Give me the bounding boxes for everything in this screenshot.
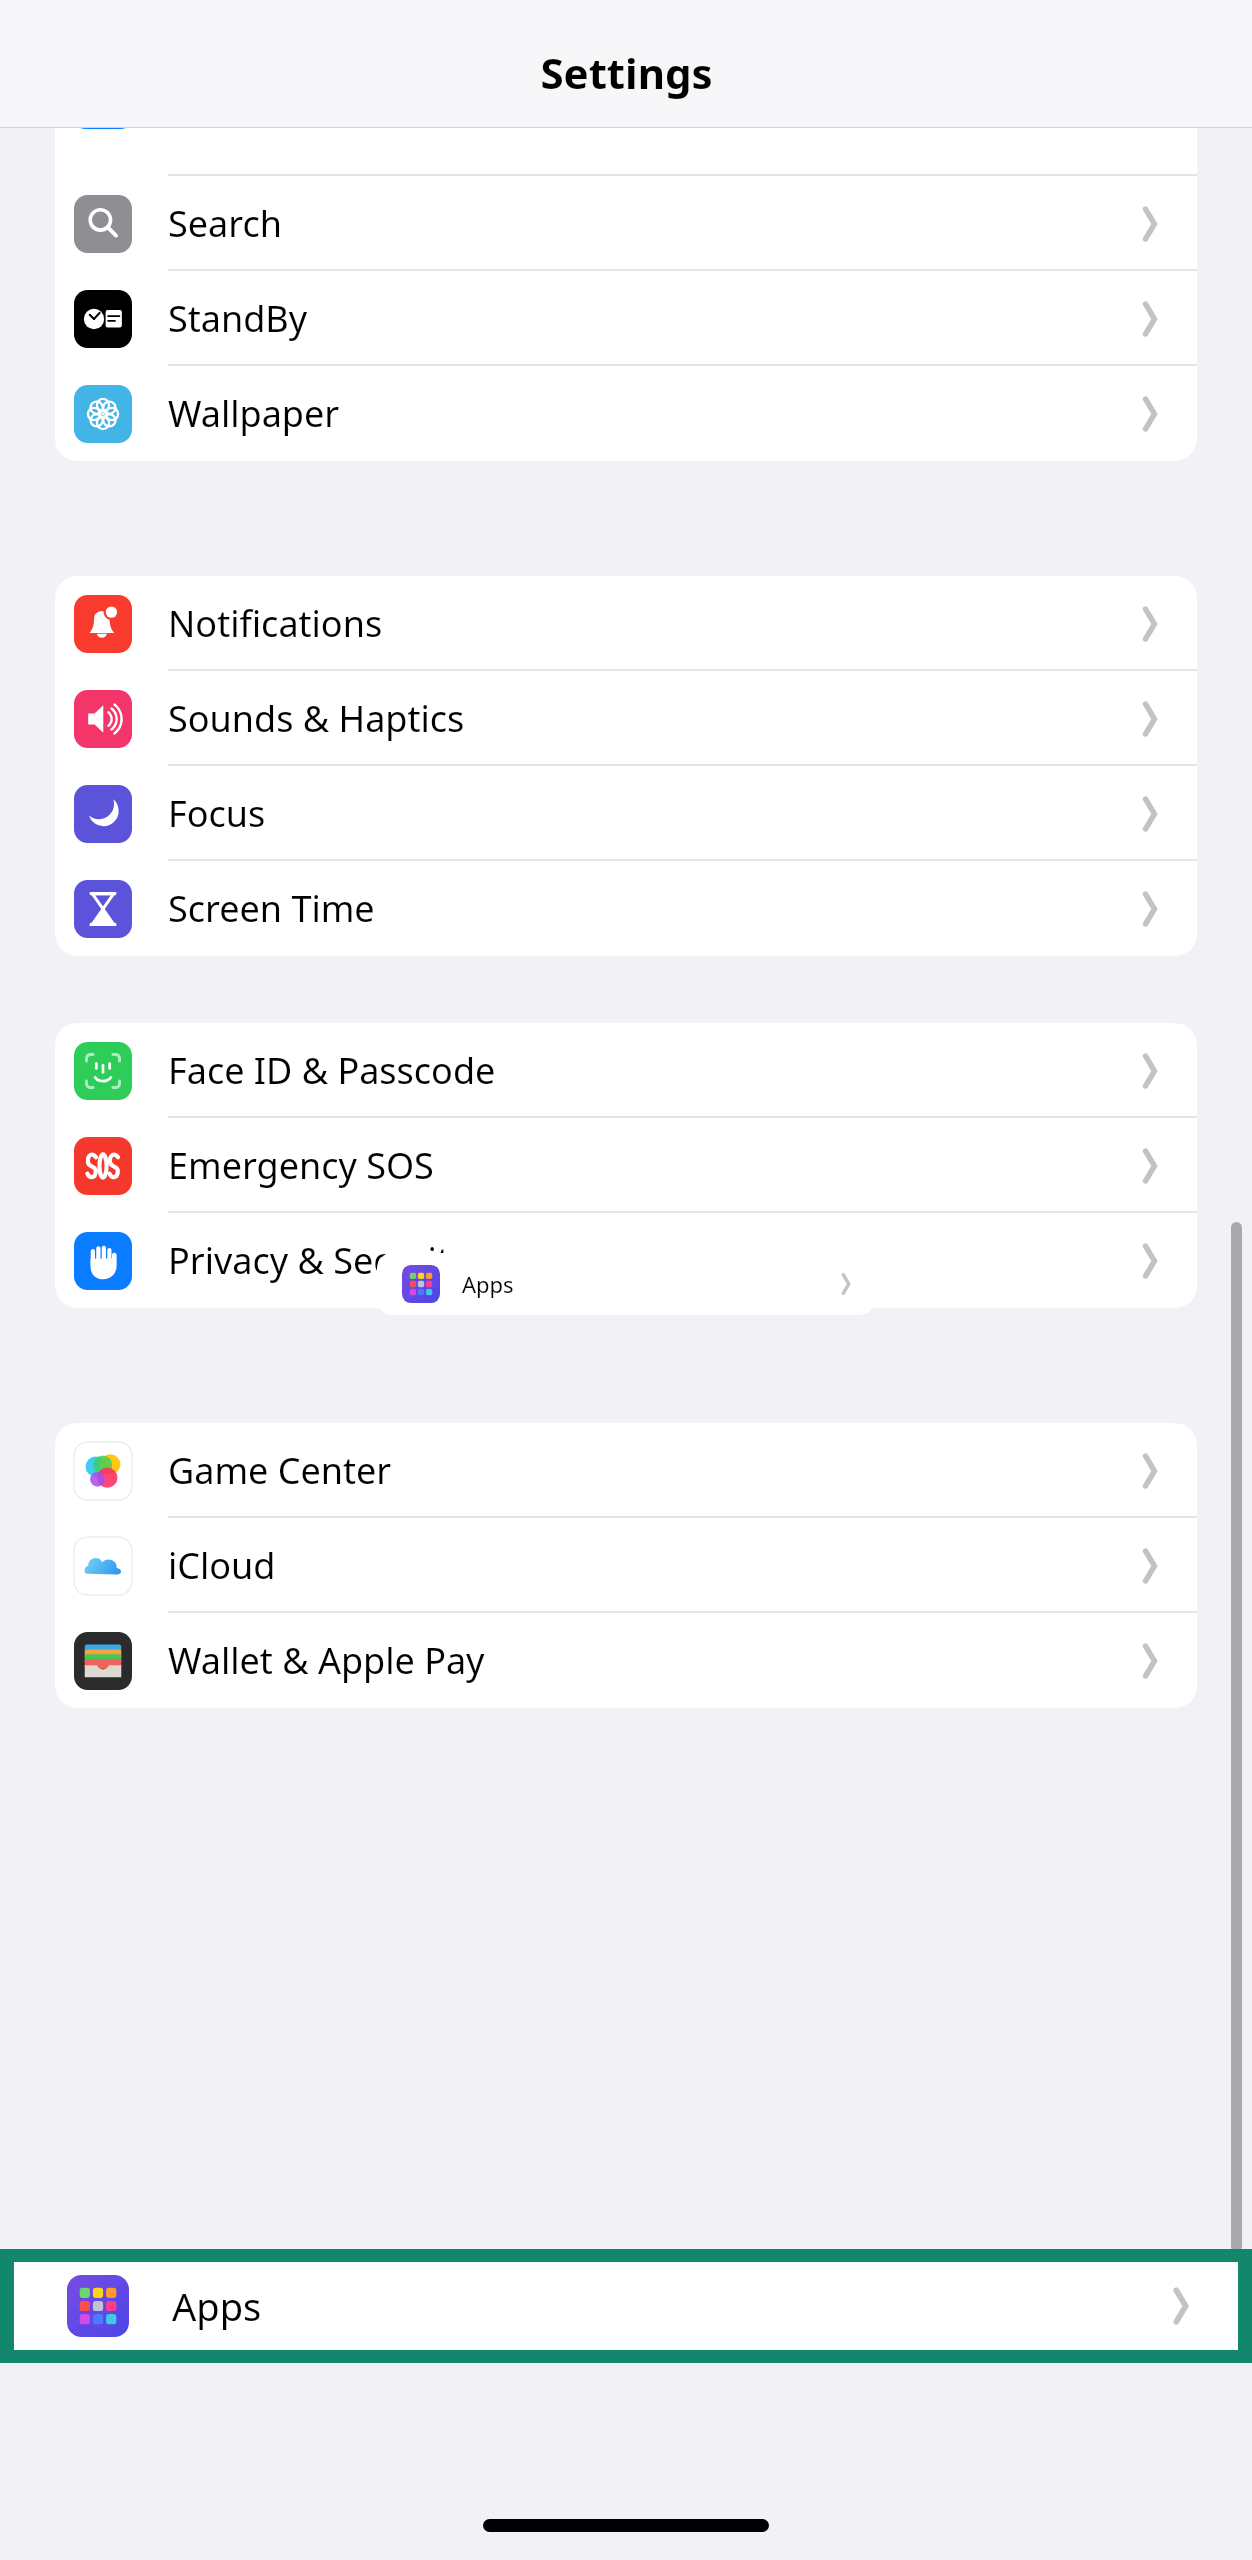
staticText: Face ID & Passcode xyxy=(168,1046,496,1095)
staticText: StandBy xyxy=(168,294,308,343)
button[interactable]: Focus xyxy=(55,766,1197,861)
staticText: Settings xyxy=(540,44,713,101)
button[interactable]: Sounds & Haptics xyxy=(55,671,1197,766)
staticText: Focus xyxy=(168,789,266,838)
button[interactable]: iCloud xyxy=(55,1518,1197,1613)
button[interactable]: Screen Time xyxy=(55,861,1197,956)
button[interactable]: Privacy & Security xyxy=(55,1213,1197,1308)
staticText: Game Center xyxy=(168,1446,392,1495)
button[interactable]: Wallet & Apple Pay xyxy=(55,1613,1197,1708)
button[interactable]: Home Screen & App Library xyxy=(55,128,1197,129)
button[interactable]: Apps xyxy=(14,2262,1238,2350)
staticText: Sounds & Haptics xyxy=(168,694,465,743)
button[interactable]: Search xyxy=(55,176,1197,271)
button[interactable]: Face ID & Passcode xyxy=(55,1023,1197,1118)
staticText: Search xyxy=(168,199,282,248)
staticText: Privacy & Security xyxy=(168,1236,469,1285)
button[interactable]: Apps xyxy=(377,1253,875,1315)
button[interactable]: Wallpaper xyxy=(55,366,1197,461)
button[interactable]: Emergency SOS xyxy=(55,1118,1197,1213)
staticText: Notifications xyxy=(168,599,383,648)
button[interactable]: StandBy xyxy=(55,271,1197,366)
staticText: Wallpaper xyxy=(168,389,340,438)
staticText: Emergency SOS xyxy=(168,1141,434,1190)
staticText: Apps xyxy=(172,2280,262,2332)
button[interactable]: Game Center xyxy=(55,1423,1197,1518)
button[interactable]: Notifications xyxy=(55,576,1197,671)
staticText: Wallet & Apple Pay xyxy=(168,1636,485,1685)
staticText: iCloud xyxy=(168,1541,276,1590)
staticText: Screen Time xyxy=(168,884,375,933)
staticText: Apps xyxy=(462,1269,514,1299)
